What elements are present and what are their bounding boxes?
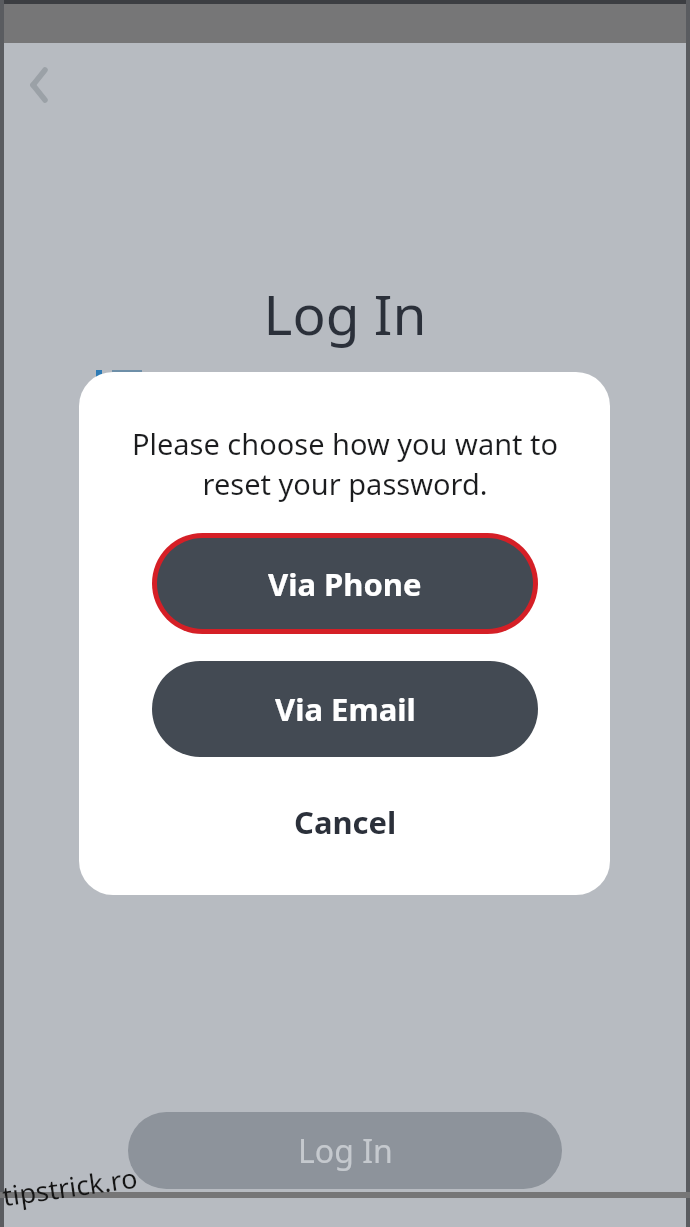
staticText: Please choose how you want to reset your…: [110, 424, 580, 504]
staticText: Via Phone: [268, 563, 422, 605]
button[interactable]: Back: [14, 55, 76, 117]
staticText: tipstrick.ro: [0, 1159, 140, 1214]
staticText: Via Email: [275, 688, 416, 730]
staticText: Log In: [298, 1129, 393, 1173]
staticText: Cancel: [294, 801, 397, 843]
button[interactable]: Log In: [128, 1112, 562, 1189]
button[interactable]: Cancel: [195, 788, 495, 856]
button[interactable]: Via Email: [152, 661, 538, 757]
staticText: Log In: [0, 276, 690, 351]
button[interactable]: Via Phone: [157, 538, 533, 629]
